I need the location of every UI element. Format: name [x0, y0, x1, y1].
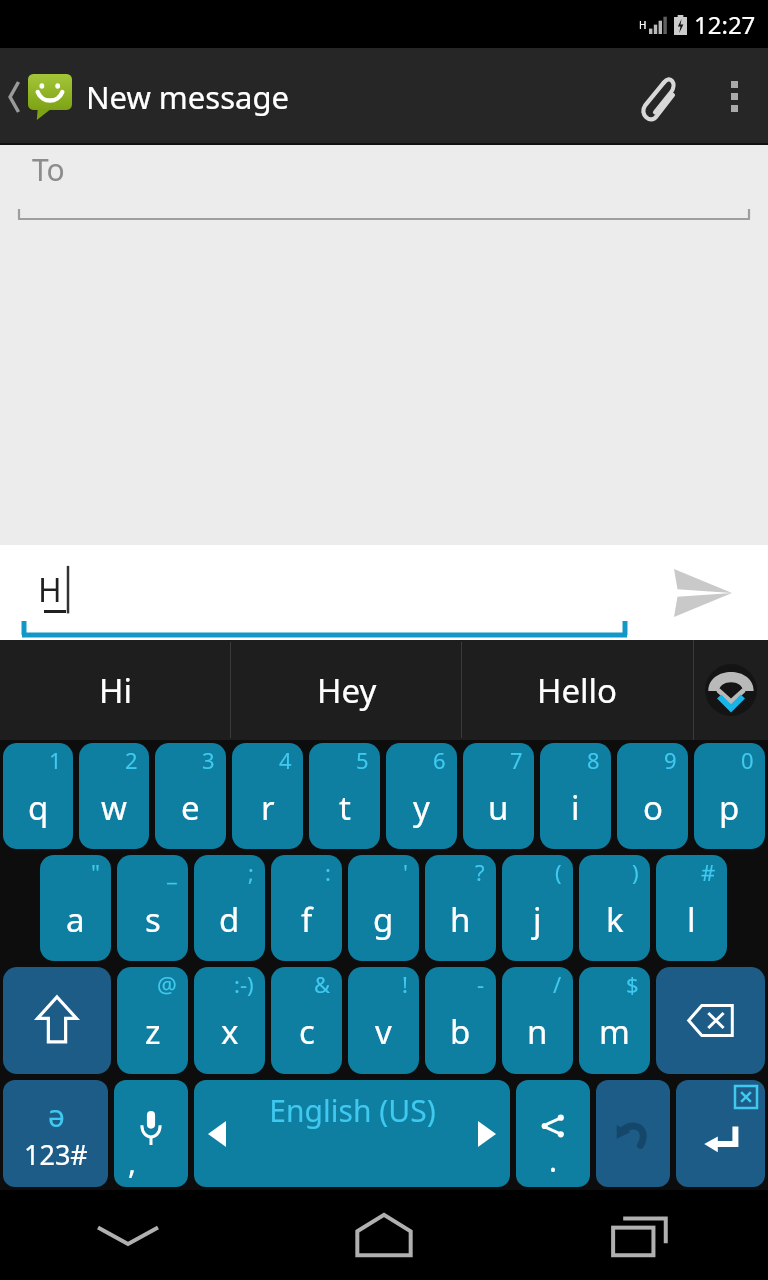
button[interactable]: Attach [610, 48, 700, 145]
staticText: @ [157, 969, 177, 999]
staticText: & [314, 969, 331, 999]
staticText: o [643, 785, 663, 830]
button[interactable]: - [425, 967, 496, 1074]
staticText: l [687, 897, 696, 942]
staticText: 0 [741, 745, 754, 775]
staticText: k [606, 897, 624, 942]
staticText: m [599, 1009, 630, 1054]
staticText: English (US) [269, 1090, 436, 1131]
staticText: 6 [433, 745, 446, 775]
staticText: w [101, 785, 127, 830]
staticText: 7 [510, 745, 523, 775]
staticText: p [719, 785, 740, 830]
staticText: ə [48, 1095, 65, 1136]
button[interactable]: : [271, 855, 342, 961]
staticText: q [28, 785, 49, 830]
staticText: ' [403, 857, 408, 887]
staticText: x [221, 1009, 239, 1054]
button[interactable]: ( [502, 855, 573, 961]
button[interactable]: ' [348, 855, 419, 961]
button[interactable]: Backspace [656, 967, 765, 1074]
staticText: i [571, 785, 580, 830]
staticText: f [301, 897, 313, 942]
button[interactable]: 8 [540, 743, 611, 849]
staticText: # [701, 857, 716, 887]
staticText: H [639, 18, 647, 32]
button[interactable]: Undo [596, 1080, 670, 1187]
staticText: 8 [587, 745, 600, 775]
staticText: u [488, 785, 509, 830]
staticText: H [38, 568, 62, 612]
staticText: :-) [234, 969, 254, 999]
staticText: t [339, 785, 351, 830]
staticText: s [145, 897, 161, 942]
button[interactable]: Expand suggestions [693, 640, 768, 740]
button[interactable]: To [18, 149, 750, 227]
button[interactable]: ) [579, 855, 650, 961]
button[interactable]: 9 [617, 743, 688, 849]
staticText: ! [402, 969, 408, 999]
staticText: h [450, 897, 471, 942]
button[interactable]: 5 [309, 743, 380, 849]
button[interactable]: Send [638, 545, 768, 640]
button[interactable]: $ [579, 967, 650, 1074]
staticText: " [91, 857, 100, 887]
staticText: New message [86, 76, 289, 118]
button[interactable]: / [502, 967, 573, 1074]
staticText: 9 [664, 745, 677, 775]
button[interactable]: 2 [79, 743, 149, 849]
button[interactable]: 4 [232, 743, 303, 849]
button[interactable]: 1 [3, 743, 73, 849]
button[interactable]: ; [194, 855, 265, 961]
staticText: : [325, 857, 331, 887]
staticText: Hello [537, 668, 618, 713]
staticText: / [553, 969, 562, 999]
button[interactable]: & [271, 967, 342, 1074]
staticText: - [477, 969, 485, 999]
button[interactable]: Hello [462, 640, 693, 740]
staticText: v [375, 1009, 392, 1054]
staticText: y [413, 785, 430, 830]
staticText: d [219, 897, 240, 942]
staticText: 5 [356, 745, 369, 775]
button[interactable]: Shift [3, 967, 111, 1074]
button[interactable]: Home [256, 1190, 512, 1280]
button[interactable]: ? [425, 855, 496, 961]
staticText: 1 [49, 745, 62, 775]
staticText: 4 [279, 745, 292, 775]
button[interactable]: " [40, 855, 111, 961]
button[interactable]: 6 [386, 743, 457, 849]
staticText: b [450, 1009, 471, 1054]
button[interactable]: Hey [231, 640, 462, 740]
button[interactable]: Space [194, 1080, 510, 1187]
button[interactable]: Share [516, 1080, 590, 1187]
button[interactable]: Hi [0, 640, 231, 740]
button[interactable]: More options [700, 48, 768, 145]
button[interactable]: ! [348, 967, 419, 1074]
button[interactable]: 7 [463, 743, 534, 849]
button[interactable]: Recent apps [512, 1190, 768, 1280]
staticText: r [261, 785, 275, 830]
button[interactable]: # [656, 855, 727, 961]
staticText: 12:27 [694, 8, 756, 41]
staticText: . [549, 1140, 558, 1181]
staticText: ( [555, 857, 562, 887]
staticText: 123# [24, 1136, 88, 1173]
button[interactable]: ə [3, 1080, 108, 1187]
button[interactable]: Back [0, 48, 76, 145]
button[interactable]: @ [117, 967, 188, 1074]
staticText: c [299, 1009, 315, 1054]
staticText: _ [167, 857, 177, 887]
button[interactable]: 0 [694, 743, 765, 849]
button[interactable]: Enter [676, 1080, 765, 1187]
button[interactable]: Hide keyboard [0, 1190, 256, 1280]
staticText: g [373, 897, 394, 942]
button[interactable]: :-) [194, 967, 265, 1074]
button[interactable]: Voice input [114, 1080, 188, 1187]
button[interactable]: 3 [155, 743, 226, 849]
button[interactable]: H [22, 545, 627, 640]
button[interactable]: _ [117, 855, 188, 961]
staticText: Hey [317, 668, 377, 713]
staticText: To [32, 149, 65, 190]
staticText: e [181, 785, 200, 830]
